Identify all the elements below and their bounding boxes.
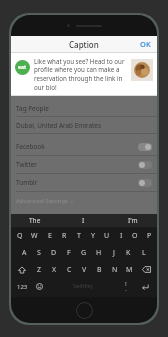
staticText: O xyxy=(132,231,138,241)
button[interactable]: V xyxy=(77,261,92,278)
staticText: W xyxy=(31,231,38,241)
staticText: B xyxy=(97,265,102,275)
staticText: Q xyxy=(17,231,23,241)
staticText: Caption xyxy=(69,39,99,50)
staticText: Advanced Settings › xyxy=(16,197,73,205)
staticText: Z xyxy=(37,265,42,275)
button[interactable]: Shift xyxy=(12,261,32,278)
staticText: K xyxy=(126,248,131,258)
button[interactable]: Enter xyxy=(134,278,155,295)
staticText: Tumblr xyxy=(16,178,138,187)
button[interactable]: C xyxy=(62,261,77,278)
staticText: V xyxy=(82,265,87,275)
staticText: C xyxy=(67,265,72,275)
button[interactable]: J xyxy=(106,244,121,261)
button[interactable]: E xyxy=(42,227,57,244)
staticText: ! . xyxy=(125,281,127,292)
staticText: Y xyxy=(91,231,95,241)
staticText: R xyxy=(62,231,67,241)
button[interactable]: Profile avatar xyxy=(15,60,30,75)
button[interactable]: G xyxy=(76,244,91,261)
staticText: OK xyxy=(140,39,151,49)
staticText: SwiftKey xyxy=(73,283,93,290)
button[interactable]: Q xyxy=(12,227,27,244)
button[interactable]: F xyxy=(61,244,76,261)
button[interactable]: K xyxy=(121,244,136,261)
button[interactable]: ! . xyxy=(117,278,134,295)
staticText: eat xyxy=(18,64,27,71)
button[interactable]: Tag People xyxy=(11,100,157,116)
button[interactable]: Backspace xyxy=(137,261,156,278)
button[interactable]: Advanced Settings › xyxy=(11,195,157,207)
button[interactable]: M xyxy=(122,261,137,278)
staticText: T xyxy=(77,231,81,241)
button[interactable]: U xyxy=(100,227,114,244)
staticText: M xyxy=(126,265,133,275)
staticText: L xyxy=(142,248,146,258)
staticText: D xyxy=(51,248,57,258)
button[interactable]: A xyxy=(17,244,31,261)
staticText: U xyxy=(104,231,110,241)
staticText: The xyxy=(29,216,41,225)
staticText: H xyxy=(96,248,102,258)
button[interactable]: Twitter xyxy=(11,156,157,173)
staticText: Dubai, United Arab Emirates xyxy=(16,121,101,130)
button[interactable]: T xyxy=(72,227,86,244)
button[interactable]: S xyxy=(31,244,46,261)
staticText: I'm xyxy=(128,216,138,225)
staticText: E xyxy=(48,231,52,241)
button[interactable]: I xyxy=(114,227,128,244)
button[interactable]: B xyxy=(92,261,107,278)
button[interactable]: Tumblr xyxy=(11,174,157,191)
button[interactable]: Like what you see? Head to our profile w… xyxy=(34,57,128,91)
staticText: Twitter xyxy=(16,160,138,169)
button[interactable]: I xyxy=(59,214,108,227)
staticText: N xyxy=(112,265,118,275)
staticText: Like what you see? Head to our profile w… xyxy=(34,57,128,91)
staticText: J xyxy=(113,248,115,258)
button[interactable]: Y xyxy=(86,227,100,244)
button[interactable]: Z xyxy=(32,261,47,278)
staticText: Tag People xyxy=(16,104,49,113)
button[interactable]: W xyxy=(27,227,42,244)
button[interactable]: R xyxy=(57,227,72,244)
staticText: A xyxy=(22,248,27,258)
button[interactable]: Facebook xyxy=(11,138,157,155)
button[interactable]: P xyxy=(142,227,156,244)
staticText: 123 xyxy=(17,283,28,291)
staticText: I xyxy=(82,216,85,225)
button[interactable]: Emoji xyxy=(31,278,48,295)
button[interactable]: Space xyxy=(48,278,117,295)
button[interactable]: The xyxy=(11,214,59,227)
staticText: S xyxy=(37,248,41,258)
button[interactable]: L xyxy=(136,244,151,261)
button[interactable]: H xyxy=(91,244,106,261)
button[interactable]: D xyxy=(46,244,61,261)
button[interactable]: I'm xyxy=(108,214,157,227)
staticText: I xyxy=(120,231,123,241)
button[interactable]: 123 xyxy=(13,278,31,295)
staticText: F xyxy=(67,248,71,258)
other: Post thumbnail xyxy=(131,59,153,81)
button[interactable]: N xyxy=(107,261,122,278)
button[interactable]: OK xyxy=(134,36,157,52)
staticText: P xyxy=(147,231,152,241)
button[interactable]: X xyxy=(47,261,62,278)
button[interactable]: O xyxy=(128,227,142,244)
staticText: Facebook xyxy=(16,142,138,151)
staticText: G xyxy=(81,248,87,258)
button[interactable]: Dubai, United Arab Emirates xyxy=(11,117,157,133)
staticText: X xyxy=(52,265,57,275)
